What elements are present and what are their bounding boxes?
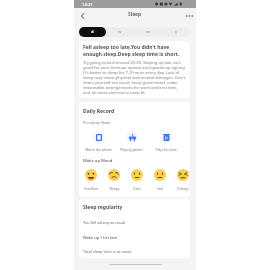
staticText: m: [146, 29, 150, 35]
staticText: Sleep regularity: [83, 204, 123, 211]
staticText: Excellent: [84, 186, 98, 190]
staticText: You fell asleep as usual: [83, 220, 126, 225]
staticText: Calm: [133, 186, 141, 190]
button[interactable]: More options: [184, 11, 194, 21]
button[interactable]: Playing games: [115, 131, 148, 151]
button[interactable]: d: [79, 27, 106, 37]
staticText: Pre-sleep State: [83, 120, 111, 125]
staticText: Watch the phone: [85, 147, 112, 151]
button[interactable]: Calm: [126, 169, 148, 190]
staticText: w: [118, 29, 122, 35]
staticText: Sad: [157, 186, 163, 190]
button[interactable]: Watch the phone: [82, 131, 115, 151]
button[interactable]: Sad: [149, 169, 171, 190]
button[interactable]: Excellent: [80, 169, 102, 190]
staticText: Try going to bed around 22:30. Staying u…: [83, 60, 186, 95]
staticText: Wake up 1 hrs late: [83, 235, 118, 240]
button[interactable]: Sleepy: [103, 169, 125, 190]
button[interactable]: w: [106, 27, 134, 37]
staticText: Droopy: [177, 186, 189, 190]
button[interactable]: y: [162, 27, 190, 37]
staticText: Sleepy: [109, 186, 120, 190]
staticText: y: [175, 29, 178, 35]
staticText: Fell asleep too late.You didn't have eno…: [83, 44, 186, 58]
button[interactable]: Droopy: [172, 169, 190, 190]
staticText: d: [91, 29, 94, 35]
staticText: Sleep: [128, 11, 142, 18]
button[interactable]: m: [134, 27, 162, 37]
staticText: Daily Record: [83, 108, 115, 115]
button[interactable]: Tidy the room: [149, 131, 182, 151]
staticText: Playing games: [120, 147, 143, 151]
staticText: 14:21: [82, 2, 93, 8]
staticText: Wake up Mood: [83, 158, 113, 164]
staticText: Total sleep time is as usual: [83, 249, 132, 254]
button[interactable]: Back: [77, 11, 87, 21]
staticText: Tidy the room: [155, 147, 177, 151]
